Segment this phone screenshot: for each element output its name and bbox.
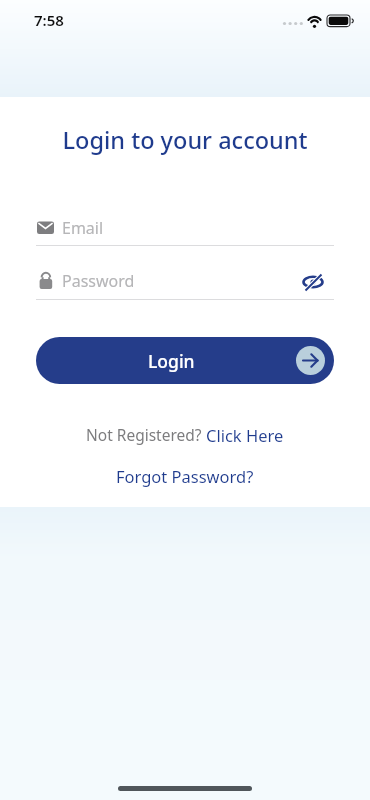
button[interactable]: Click Here: [206, 424, 284, 446]
staticText: 7:58: [34, 10, 64, 30]
staticText: Email: [62, 217, 104, 239]
button[interactable]: Login: [36, 337, 334, 384]
button[interactable]: Forgot Password?: [116, 465, 254, 487]
staticText: Password: [62, 270, 135, 292]
button[interactable]: Email: [36, 212, 334, 246]
staticText: Login to your account: [0, 124, 370, 156]
button[interactable]: [297, 265, 331, 299]
staticText: Login: [148, 349, 195, 373]
staticText: Not Registered?: [86, 424, 206, 445]
button[interactable]: Password: [36, 265, 334, 299]
